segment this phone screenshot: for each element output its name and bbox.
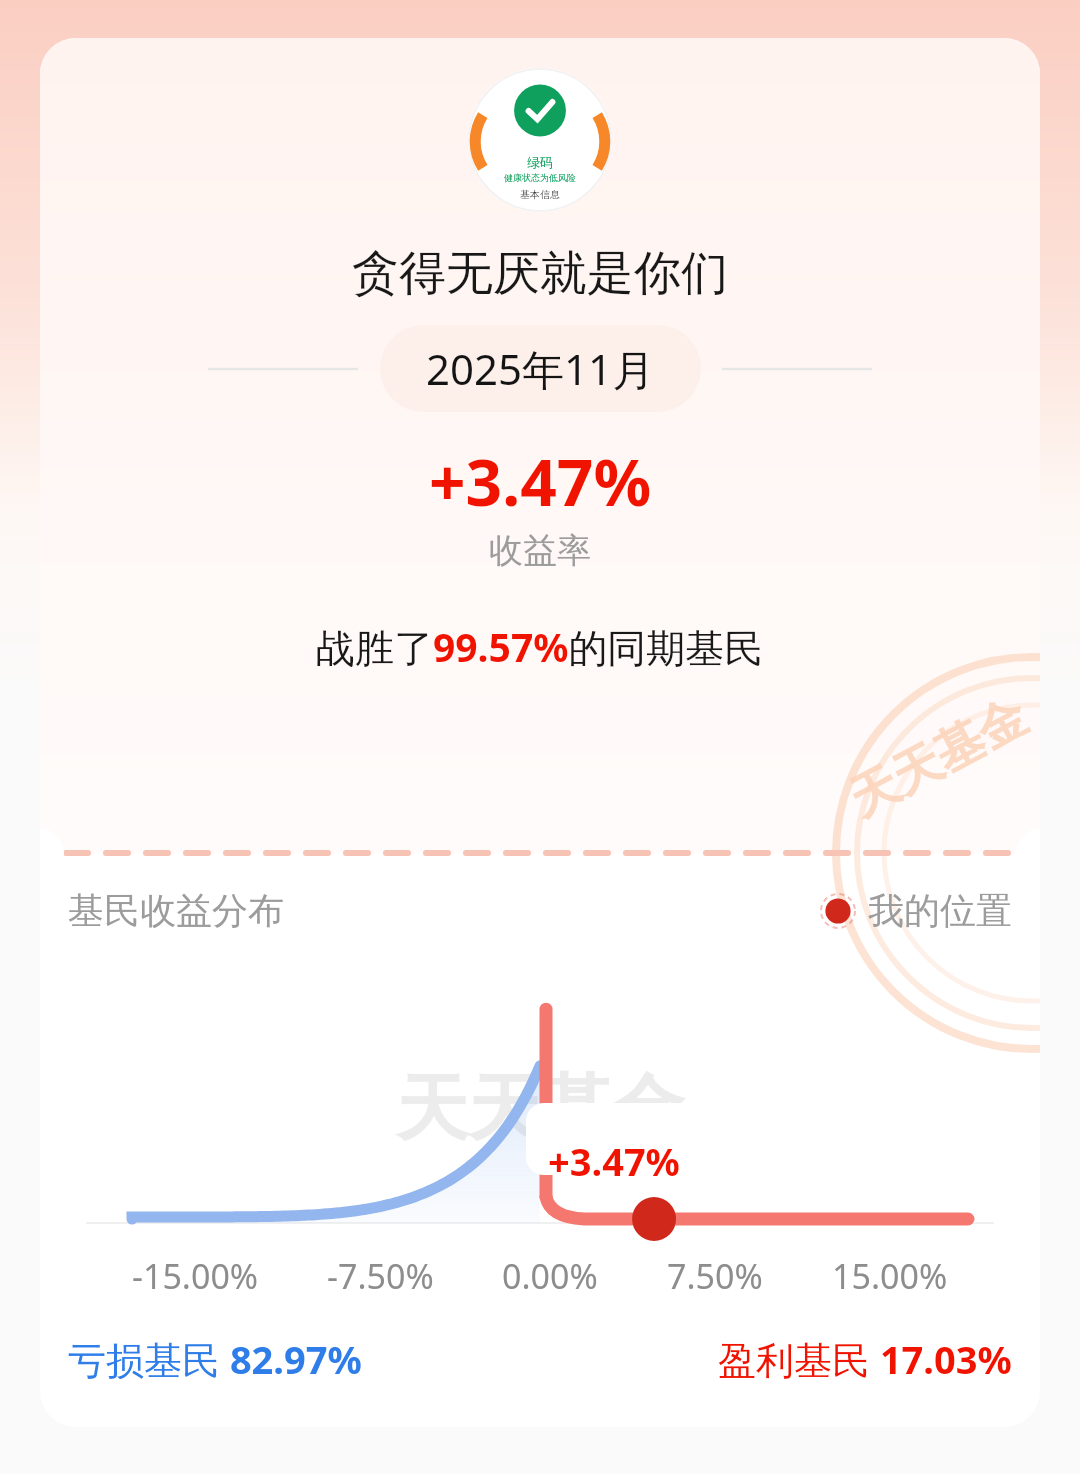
staticText: 天天基金 <box>396 1064 684 1155</box>
staticText: 贪得无厌就是你们 <box>352 244 728 303</box>
staticText: 我的位置 <box>868 888 1012 933</box>
staticText: 亏损基民 82.97% <box>68 1333 362 1385</box>
staticText: 2025年11月 <box>426 340 655 397</box>
staticText: +3.47% <box>548 1135 680 1187</box>
button[interactable]: 2025年11月 <box>380 325 701 412</box>
staticText: +3.47% <box>429 438 652 525</box>
button[interactable]: 我的位置 <box>820 888 1012 933</box>
staticText: 健康状态为低风险 <box>504 172 576 183</box>
staticText: -7.50% <box>327 1253 434 1299</box>
button[interactable]: Profile avatar <box>468 68 612 212</box>
staticText: 绿码 <box>527 154 553 170</box>
staticText: 7.50% <box>667 1253 763 1299</box>
staticText: 15.00% <box>832 1253 948 1299</box>
staticText: 基本信息 <box>520 188 560 201</box>
staticText: 天天基金 <box>839 686 1037 829</box>
staticText: -15.00% <box>132 1253 259 1299</box>
staticText: 盈利基民 17.03% <box>718 1333 1012 1385</box>
staticText: 收益率 <box>489 529 591 572</box>
staticText: 战胜了99.57%的同期基民 <box>316 620 764 673</box>
staticText: 0.00% <box>502 1253 598 1299</box>
staticText: 基民收益分布 <box>68 888 284 933</box>
